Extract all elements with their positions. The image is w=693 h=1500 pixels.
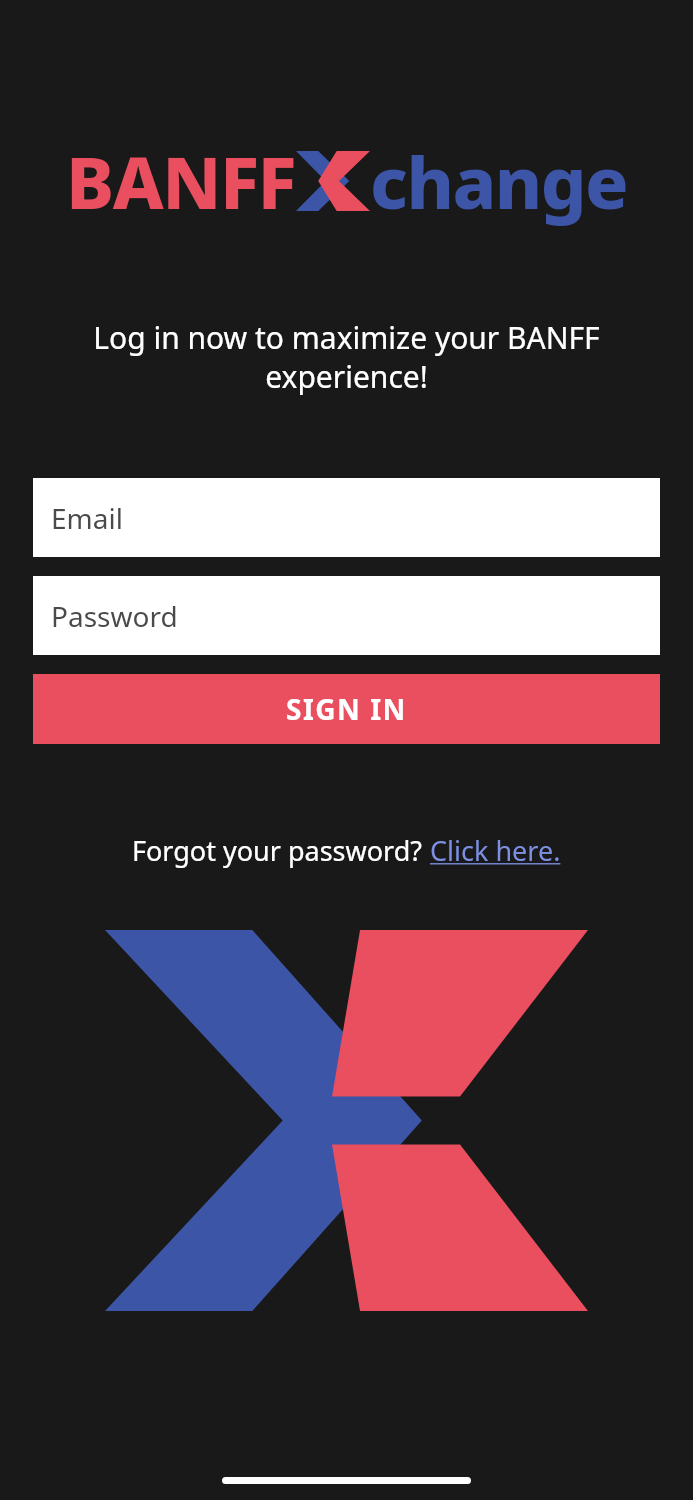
button[interactable]: Password: [33, 576, 660, 655]
other: BANFFXchange logo: [105, 930, 588, 1311]
staticText: Log in now to maximize your BANFF experi…: [72, 317, 621, 396]
staticText: BANFF: [66, 132, 296, 230]
button[interactable]: Email: [33, 478, 660, 557]
staticText: SIGN IN: [286, 690, 407, 728]
staticText: Forgot your password?: [132, 832, 430, 869]
button[interactable]: SIGN IN: [33, 674, 660, 744]
staticText: Click here.: [430, 832, 561, 869]
staticText: Password: [51, 597, 178, 635]
staticText: Email: [51, 499, 123, 537]
staticText: change: [370, 132, 628, 230]
button[interactable]: Click here.: [430, 832, 561, 869]
